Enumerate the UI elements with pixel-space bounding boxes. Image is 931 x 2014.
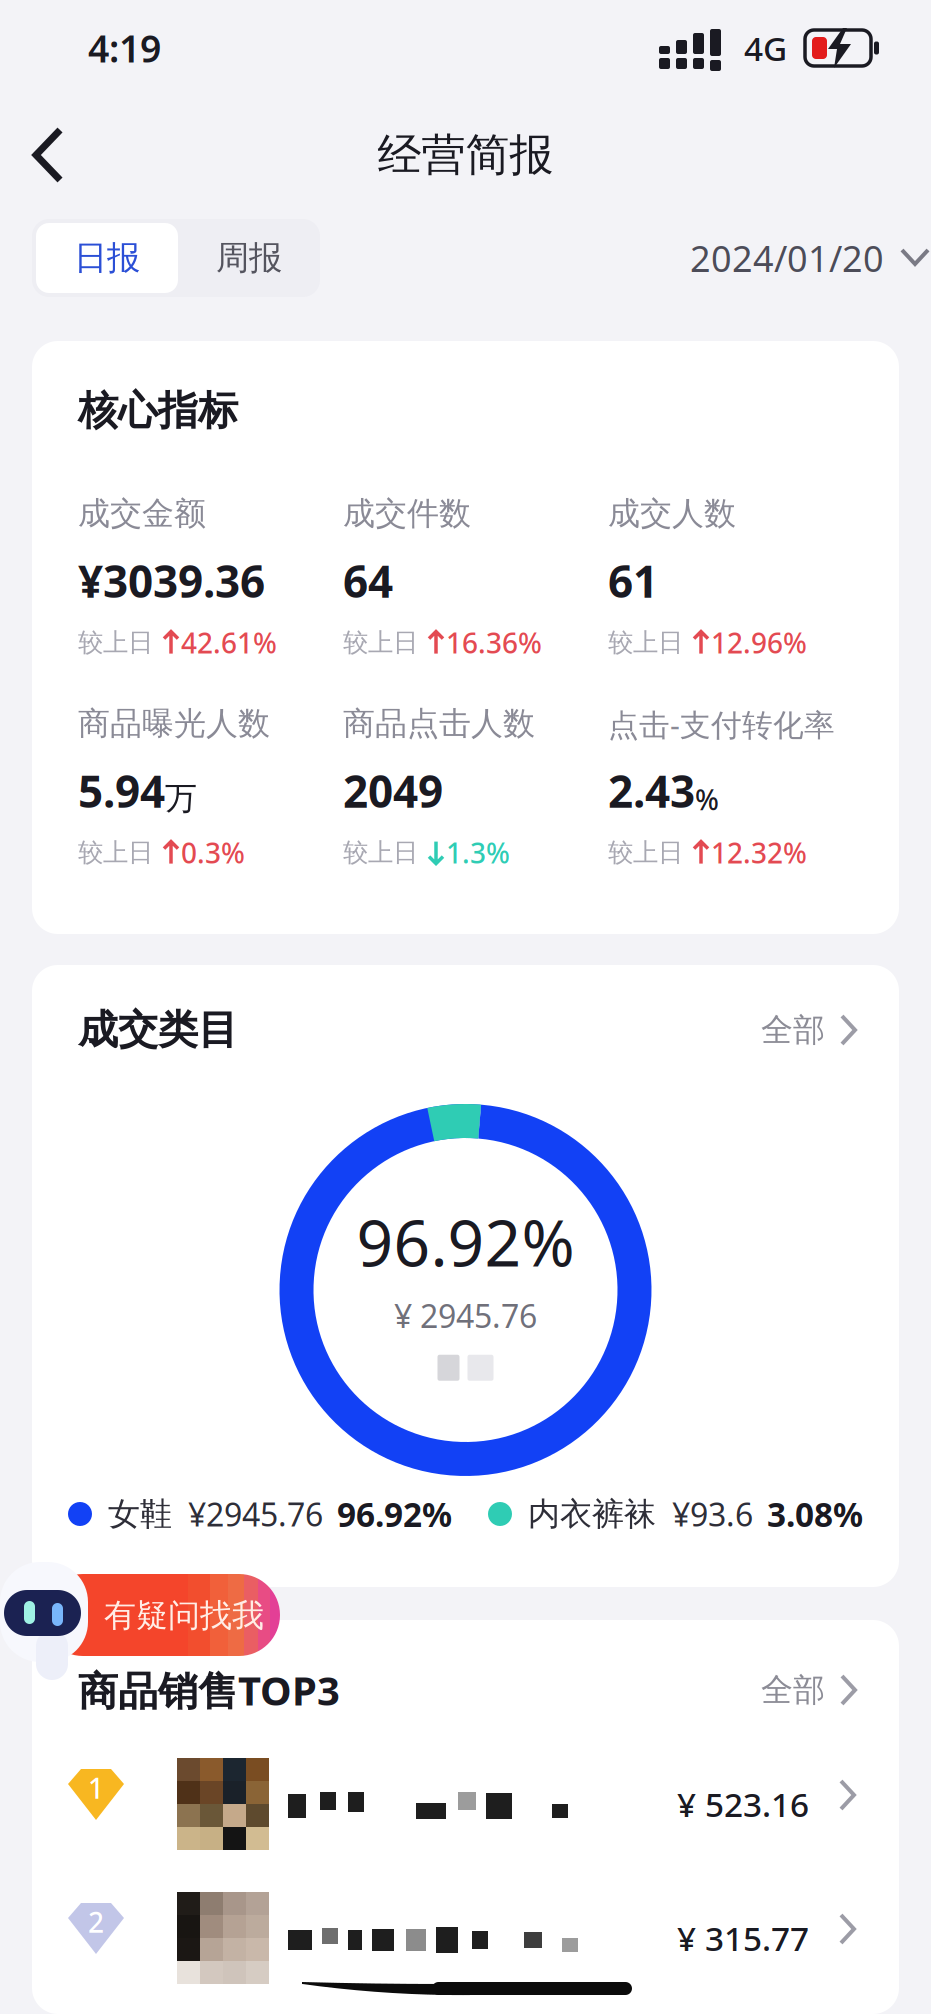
- staticText: 4:19: [88, 23, 161, 73]
- staticText: 内衣裤袜: [528, 1494, 656, 1534]
- button[interactable]: 1: [32, 1736, 899, 1870]
- staticText: 女鞋: [108, 1494, 172, 1534]
- staticText: 较上日: [343, 627, 418, 658]
- staticText: 核心指标: [78, 386, 238, 435]
- staticText: 万: [165, 779, 197, 818]
- staticText: 有疑问找我: [104, 1596, 264, 1635]
- staticText: 61: [608, 552, 658, 610]
- staticText: 较上日: [343, 837, 418, 868]
- staticText: 点击-支付转化率: [608, 704, 835, 745]
- staticText: 42.61%: [181, 624, 277, 661]
- button[interactable]: 周报: [178, 223, 320, 293]
- staticText: 全部: [761, 1010, 825, 1050]
- button[interactable]: 2: [32, 1870, 899, 2004]
- staticText: 64: [343, 552, 393, 610]
- staticText: 16.36%: [446, 624, 542, 661]
- staticText: %: [695, 781, 719, 818]
- staticText: ¥3039.36: [78, 552, 265, 610]
- staticText: 较上日: [608, 837, 683, 868]
- staticText: ¥93.6: [672, 1493, 753, 1535]
- button[interactable]: 日报: [36, 223, 178, 293]
- button[interactable]: 全部: [761, 1010, 859, 1050]
- staticText: 商品曝光人数: [78, 704, 270, 743]
- staticText: ¥ 315.77: [677, 1916, 809, 1960]
- staticText: 商品销售TOP3: [78, 1663, 340, 1716]
- staticText: 全部: [761, 1670, 825, 1710]
- staticText: ¥ 2945.76: [394, 1294, 537, 1337]
- staticText: 12.32%: [711, 834, 807, 871]
- staticText: 周报: [216, 237, 282, 278]
- staticText: 2049: [343, 762, 443, 820]
- staticText: 1.3%: [446, 834, 510, 871]
- staticText: 经营简报: [377, 128, 553, 182]
- staticText: 日报: [74, 237, 140, 278]
- staticText: 4G: [744, 26, 787, 70]
- staticText: 1: [88, 1769, 104, 1807]
- staticText: 0.3%: [181, 834, 245, 871]
- staticText: ¥ 523.16: [677, 1782, 809, 1826]
- staticText: 成交件数: [343, 494, 471, 533]
- staticText: 较上日: [78, 837, 153, 868]
- button[interactable]: 全部: [761, 1670, 859, 1710]
- staticText: 2.43: [608, 762, 695, 820]
- staticText: 96.92%: [356, 1199, 574, 1284]
- staticText: 5.94: [78, 762, 165, 820]
- staticText: 成交类目: [78, 1005, 238, 1054]
- staticText: 96.92%: [337, 1492, 452, 1536]
- button[interactable]: 2024/01/20: [0, 219, 930, 297]
- staticText: 较上日: [608, 627, 683, 658]
- staticText: 成交人数: [608, 494, 736, 533]
- staticText: 12.96%: [711, 624, 807, 661]
- button[interactable]: 返回: [0, 105, 96, 205]
- staticText: 2024/01/20: [690, 234, 884, 282]
- button[interactable]: 智能助手: [0, 1558, 290, 1678]
- staticText: 较上日: [78, 627, 153, 658]
- staticText: 3.08%: [767, 1492, 863, 1536]
- staticText: ¥2945.76: [188, 1493, 323, 1535]
- staticText: 成交金额: [78, 494, 206, 533]
- staticText: 商品点击人数: [343, 704, 535, 743]
- staticText: 2: [88, 1903, 104, 1941]
